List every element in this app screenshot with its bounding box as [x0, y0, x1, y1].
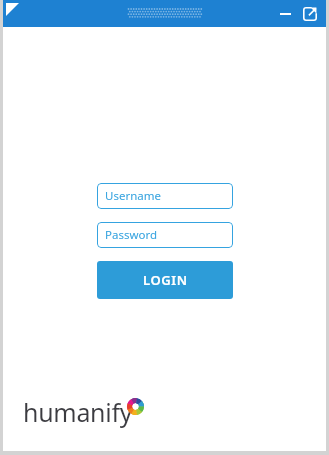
- staticText: LOGIN: [143, 271, 188, 289]
- staticText: humanify: [23, 395, 133, 429]
- staticText: Password: [105, 227, 158, 243]
- button[interactable]: Username: [97, 183, 233, 209]
- button[interactable]: LOGIN: [97, 261, 233, 299]
- staticText: Username: [105, 188, 161, 204]
- button[interactable]: Minimize: [275, 4, 295, 24]
- button[interactable]: Password: [97, 222, 233, 248]
- button[interactable]: Open in new window: [300, 4, 320, 24]
- other: App menu: [6, 3, 19, 16]
